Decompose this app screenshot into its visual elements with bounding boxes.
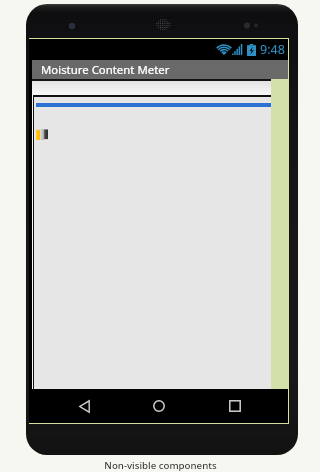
staticText: Moisture Content Meter	[41, 62, 170, 78]
button[interactable]: Recent apps	[213, 389, 257, 423]
button[interactable]: Home	[137, 389, 181, 423]
button[interactable]: Back	[62, 389, 106, 423]
staticText: 9:48	[260, 41, 285, 58]
staticText: Non-visible components	[104, 459, 217, 472]
